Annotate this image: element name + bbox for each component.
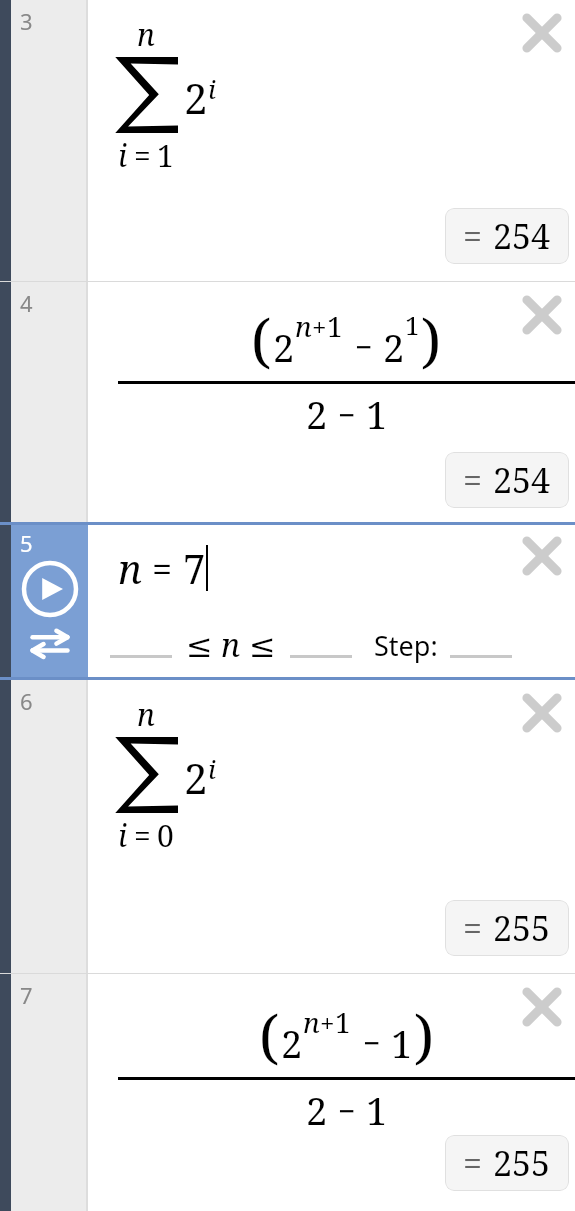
button[interactable]: Toggle slider direction xyxy=(27,626,73,660)
staticText: i xyxy=(118,815,128,856)
button[interactable]: = xyxy=(445,900,569,956)
staticText: 255 xyxy=(493,1140,551,1186)
staticText: 1 xyxy=(327,307,343,345)
staticText: 1 xyxy=(405,307,420,342)
staticText: n xyxy=(221,623,241,667)
staticText: 254 xyxy=(493,457,551,503)
staticText: 2 xyxy=(281,1017,303,1069)
staticText: 7 xyxy=(183,541,206,595)
staticText: n xyxy=(303,1003,320,1041)
staticText: ) xyxy=(414,996,435,1075)
staticText: ) xyxy=(421,300,442,379)
staticText: 2 xyxy=(383,321,405,373)
button[interactable]: ( xyxy=(88,974,575,1211)
button[interactable] xyxy=(450,632,512,658)
staticText: = xyxy=(463,905,483,951)
button[interactable]: Play slider animation xyxy=(21,560,79,618)
button[interactable] xyxy=(290,632,352,658)
staticText: = xyxy=(463,213,483,259)
button[interactable]: Delete expression xyxy=(515,529,569,583)
staticText: 1 xyxy=(366,1084,388,1136)
staticText: 3 xyxy=(20,6,33,36)
staticText: = xyxy=(152,544,173,593)
staticText: 1 xyxy=(157,135,174,176)
staticText: ≤ xyxy=(249,627,276,664)
button[interactable]: n xyxy=(88,525,575,677)
staticText: 5 xyxy=(20,528,33,558)
staticText: 1 xyxy=(391,1017,413,1069)
staticText: + xyxy=(320,1005,335,1040)
staticText: 2 xyxy=(184,749,208,806)
staticText: Step: xyxy=(374,627,438,664)
button[interactable]: Delete expression xyxy=(515,686,569,740)
button[interactable]: n xyxy=(88,0,575,282)
button[interactable]: Delete expression xyxy=(515,980,569,1034)
staticText: n xyxy=(137,14,155,55)
staticText: = xyxy=(134,135,151,176)
staticText: 1 xyxy=(366,388,388,440)
staticText: 2 xyxy=(306,388,328,440)
button[interactable]: Delete expression xyxy=(515,288,569,342)
staticText: n xyxy=(295,307,312,345)
staticText: = xyxy=(134,815,151,856)
staticText: 4 xyxy=(20,288,33,318)
button[interactable]: Delete expression xyxy=(515,6,569,60)
button[interactable]: = xyxy=(445,1135,569,1191)
staticText: ≤ xyxy=(186,627,213,664)
staticText: ( xyxy=(259,996,280,1075)
staticText: i xyxy=(118,135,128,176)
staticText: 6 xyxy=(20,686,33,716)
staticText: 7 xyxy=(20,980,33,1010)
staticText: 0 xyxy=(157,815,174,856)
staticText: 254 xyxy=(493,213,551,259)
staticText: 2 xyxy=(184,69,208,126)
staticText: n xyxy=(118,541,142,595)
staticText: 255 xyxy=(493,905,551,951)
button[interactable]: = xyxy=(445,452,569,508)
staticText: 1 xyxy=(335,1003,351,1041)
staticText: i xyxy=(208,751,216,786)
staticText: i xyxy=(208,71,216,106)
staticText: ( xyxy=(251,300,272,379)
staticText: + xyxy=(312,309,327,344)
button[interactable] xyxy=(110,632,172,658)
staticText: = xyxy=(463,1140,483,1186)
button[interactable]: = xyxy=(445,208,569,264)
staticText: − xyxy=(338,394,356,435)
staticText: 2 xyxy=(273,321,295,373)
button[interactable]: ( xyxy=(88,282,575,522)
staticText: − xyxy=(363,1022,381,1063)
staticText: n xyxy=(137,694,155,735)
staticText: − xyxy=(355,326,373,367)
staticText: 2 xyxy=(306,1084,328,1136)
staticText: − xyxy=(338,1090,356,1131)
staticText: = xyxy=(463,457,483,503)
button[interactable]: n xyxy=(88,680,575,974)
